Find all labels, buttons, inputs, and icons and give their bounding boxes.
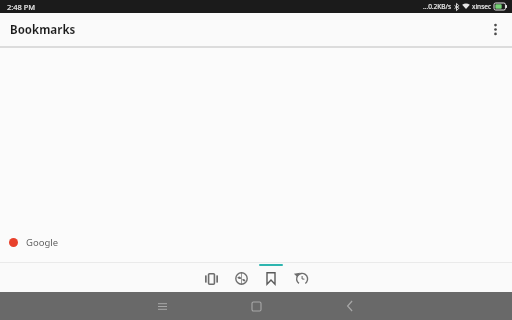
button[interactable]: Home	[242, 292, 270, 320]
staticText: 2:48 PM	[7, 2, 36, 12]
staticText: …0.2KB/s	[423, 2, 452, 11]
staticText: Bookmarks	[10, 22, 76, 38]
button[interactable]: Sites	[229, 263, 253, 292]
staticText: xinsec	[472, 2, 492, 11]
button[interactable]: Tabs	[199, 263, 223, 292]
button[interactable]: Back	[336, 292, 364, 320]
button[interactable]: Bookmarks	[259, 263, 283, 292]
staticText: Google	[26, 236, 59, 249]
button[interactable]: Google	[0, 228, 512, 256]
button[interactable]: More options	[478, 13, 512, 46]
button[interactable]: History	[289, 263, 313, 292]
button[interactable]: Recents	[148, 292, 176, 320]
